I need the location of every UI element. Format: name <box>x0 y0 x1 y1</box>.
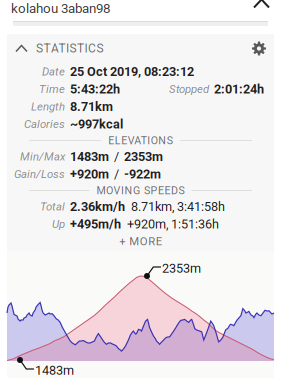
staticText: +920m <box>70 167 109 182</box>
staticText: Time <box>39 83 65 96</box>
staticText: +495m/h <box>70 217 121 232</box>
staticText: Min/Max <box>20 150 65 163</box>
staticText: Up <box>52 218 65 231</box>
staticText: Length <box>31 100 65 113</box>
button[interactable]: Collapse panel <box>246 0 281 17</box>
staticText: 8.71km, 3:41:58h <box>131 199 225 214</box>
button[interactable]: Collapse <box>7 37 36 59</box>
staticText: Gain/Loss <box>14 168 65 181</box>
button[interactable]: Settings <box>244 37 274 59</box>
button[interactable]: + MORE <box>7 233 274 250</box>
staticText: 1483m <box>35 363 74 378</box>
staticText: / <box>114 149 119 164</box>
staticText: + MORE <box>119 235 162 248</box>
staticText: 25 Oct 2019, 08:23:12 <box>70 64 194 79</box>
staticText: 5:43:22h <box>70 82 120 97</box>
staticText: -922m <box>124 167 161 182</box>
staticText: 2353m <box>162 261 201 276</box>
staticText: / <box>114 167 119 182</box>
staticText: ELEVATIONS <box>108 134 173 147</box>
staticText: 2:01:24h <box>214 82 264 97</box>
staticText: ~997kcal <box>70 117 123 132</box>
staticText: 8.71km <box>70 99 113 114</box>
staticText: Total <box>40 200 65 213</box>
staticText: 2353m <box>124 149 163 164</box>
staticText: MOVING SPEEDS <box>96 184 184 197</box>
staticText: Date <box>42 65 65 78</box>
staticText: kolahou 3aban98 <box>11 1 110 16</box>
staticText: Calories <box>24 118 65 131</box>
staticText: +920m, 1:51:36h <box>127 217 219 232</box>
staticText: 2.36km/h <box>70 199 125 214</box>
staticText: Stopped <box>169 83 209 96</box>
staticText: 1483m <box>70 149 109 164</box>
staticText: STATISTICS <box>36 41 103 56</box>
